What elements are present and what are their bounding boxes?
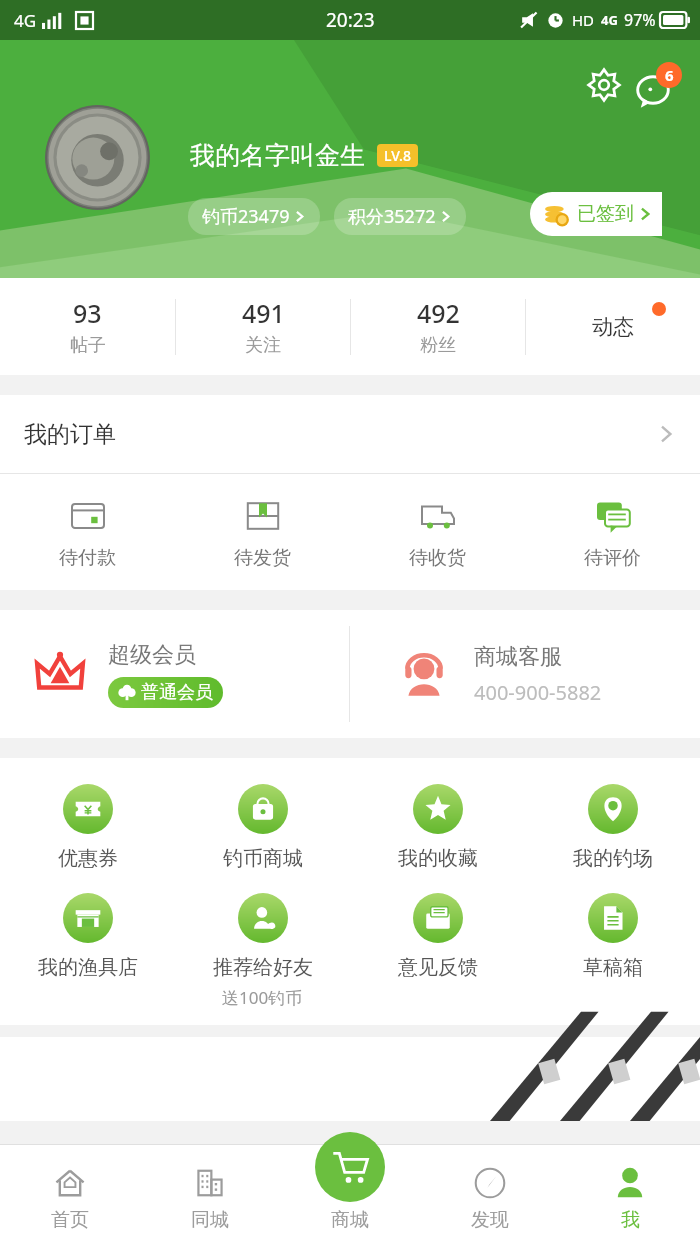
button[interactable]: 草稿箱	[525, 893, 700, 980]
staticText: 首页	[51, 1208, 89, 1232]
button[interactable]: 积分35272	[334, 198, 466, 235]
staticText: 同城	[191, 1208, 229, 1232]
staticText: 我的名字叫金生	[190, 140, 365, 171]
staticText: 待评价	[584, 546, 641, 570]
staticText: 4G	[601, 11, 618, 29]
staticText: 待付款	[59, 546, 116, 570]
staticText: 超级会员	[108, 641, 196, 669]
staticText: 钓币23479	[202, 204, 290, 229]
button[interactable]: 超级会员	[0, 610, 349, 738]
button[interactable]: 我	[560, 1144, 700, 1244]
button[interactable]: 已签到	[530, 192, 662, 236]
staticText: 送100钓币	[222, 986, 303, 1009]
staticText: 商城客服	[474, 643, 562, 671]
staticText: HD	[572, 10, 595, 30]
staticText: 待收货	[409, 546, 466, 570]
staticText: 发现	[471, 1208, 509, 1232]
staticText: 我的订单	[24, 420, 116, 449]
button[interactable]: 钓币商城	[175, 784, 350, 871]
button[interactable]: Messages	[636, 62, 682, 108]
staticText: 普通会员	[141, 681, 213, 704]
staticText: 已签到	[577, 202, 634, 226]
staticText: 积分35272	[348, 204, 436, 229]
staticText: 4G	[14, 9, 37, 32]
button[interactable]: 钓币23479	[188, 198, 320, 235]
button[interactable]: 商城	[280, 1132, 420, 1244]
button[interactable]: 我的渔具店	[0, 893, 175, 980]
staticText: 400-900-5882	[474, 679, 602, 706]
staticText: 帖子	[70, 334, 106, 357]
staticText: 我的渔具店	[38, 955, 138, 980]
button[interactable]: 同城	[140, 1144, 280, 1244]
button[interactable]: 首页	[0, 1144, 140, 1244]
staticText: 待发货	[234, 546, 291, 570]
staticText: 我的钓场	[573, 846, 653, 871]
staticText: 93	[73, 296, 102, 330]
staticText: 推荐给好友	[213, 955, 313, 980]
staticText: 20:23	[326, 7, 375, 33]
button[interactable]: 商城客服	[350, 610, 700, 738]
staticText: 意见反馈	[398, 955, 478, 980]
button[interactable]: 动态	[526, 278, 700, 375]
staticText: 粉丝	[420, 334, 456, 357]
button[interactable]: 待发货	[175, 496, 350, 570]
staticText: 动态	[592, 314, 634, 340]
button[interactable]: 93	[0, 278, 175, 375]
button[interactable]: 待评价	[525, 496, 700, 570]
button[interactable]: 意见反馈	[350, 893, 525, 980]
button[interactable]: 我的订单	[0, 395, 700, 473]
button[interactable]: Avatar	[45, 105, 150, 210]
staticText: 优惠券	[58, 846, 118, 871]
staticText: 商城	[331, 1208, 369, 1232]
staticText: 491	[242, 296, 285, 330]
button[interactable]: 491	[176, 278, 350, 375]
staticText: 我	[621, 1208, 640, 1232]
button[interactable]: 待付款	[0, 496, 175, 570]
button[interactable]: 优惠券	[0, 784, 175, 871]
button[interactable]: 发现	[420, 1144, 560, 1244]
button[interactable]: 我的钓场	[525, 784, 700, 871]
button[interactable]: 492	[351, 278, 525, 375]
staticText: 草稿箱	[583, 955, 643, 980]
staticText: 钓币商城	[223, 846, 303, 871]
staticText: 97%	[624, 9, 656, 31]
button[interactable]: 推荐给好友	[175, 893, 350, 1009]
button[interactable]: 我的收藏	[350, 784, 525, 871]
staticText: 我的收藏	[398, 846, 478, 871]
staticText: 6	[665, 65, 674, 85]
staticText: 关注	[245, 334, 281, 357]
staticText: LV.8	[384, 146, 411, 165]
button[interactable]: Settings	[582, 63, 626, 107]
button[interactable]: 待收货	[350, 496, 525, 570]
staticText: 492	[417, 296, 460, 330]
